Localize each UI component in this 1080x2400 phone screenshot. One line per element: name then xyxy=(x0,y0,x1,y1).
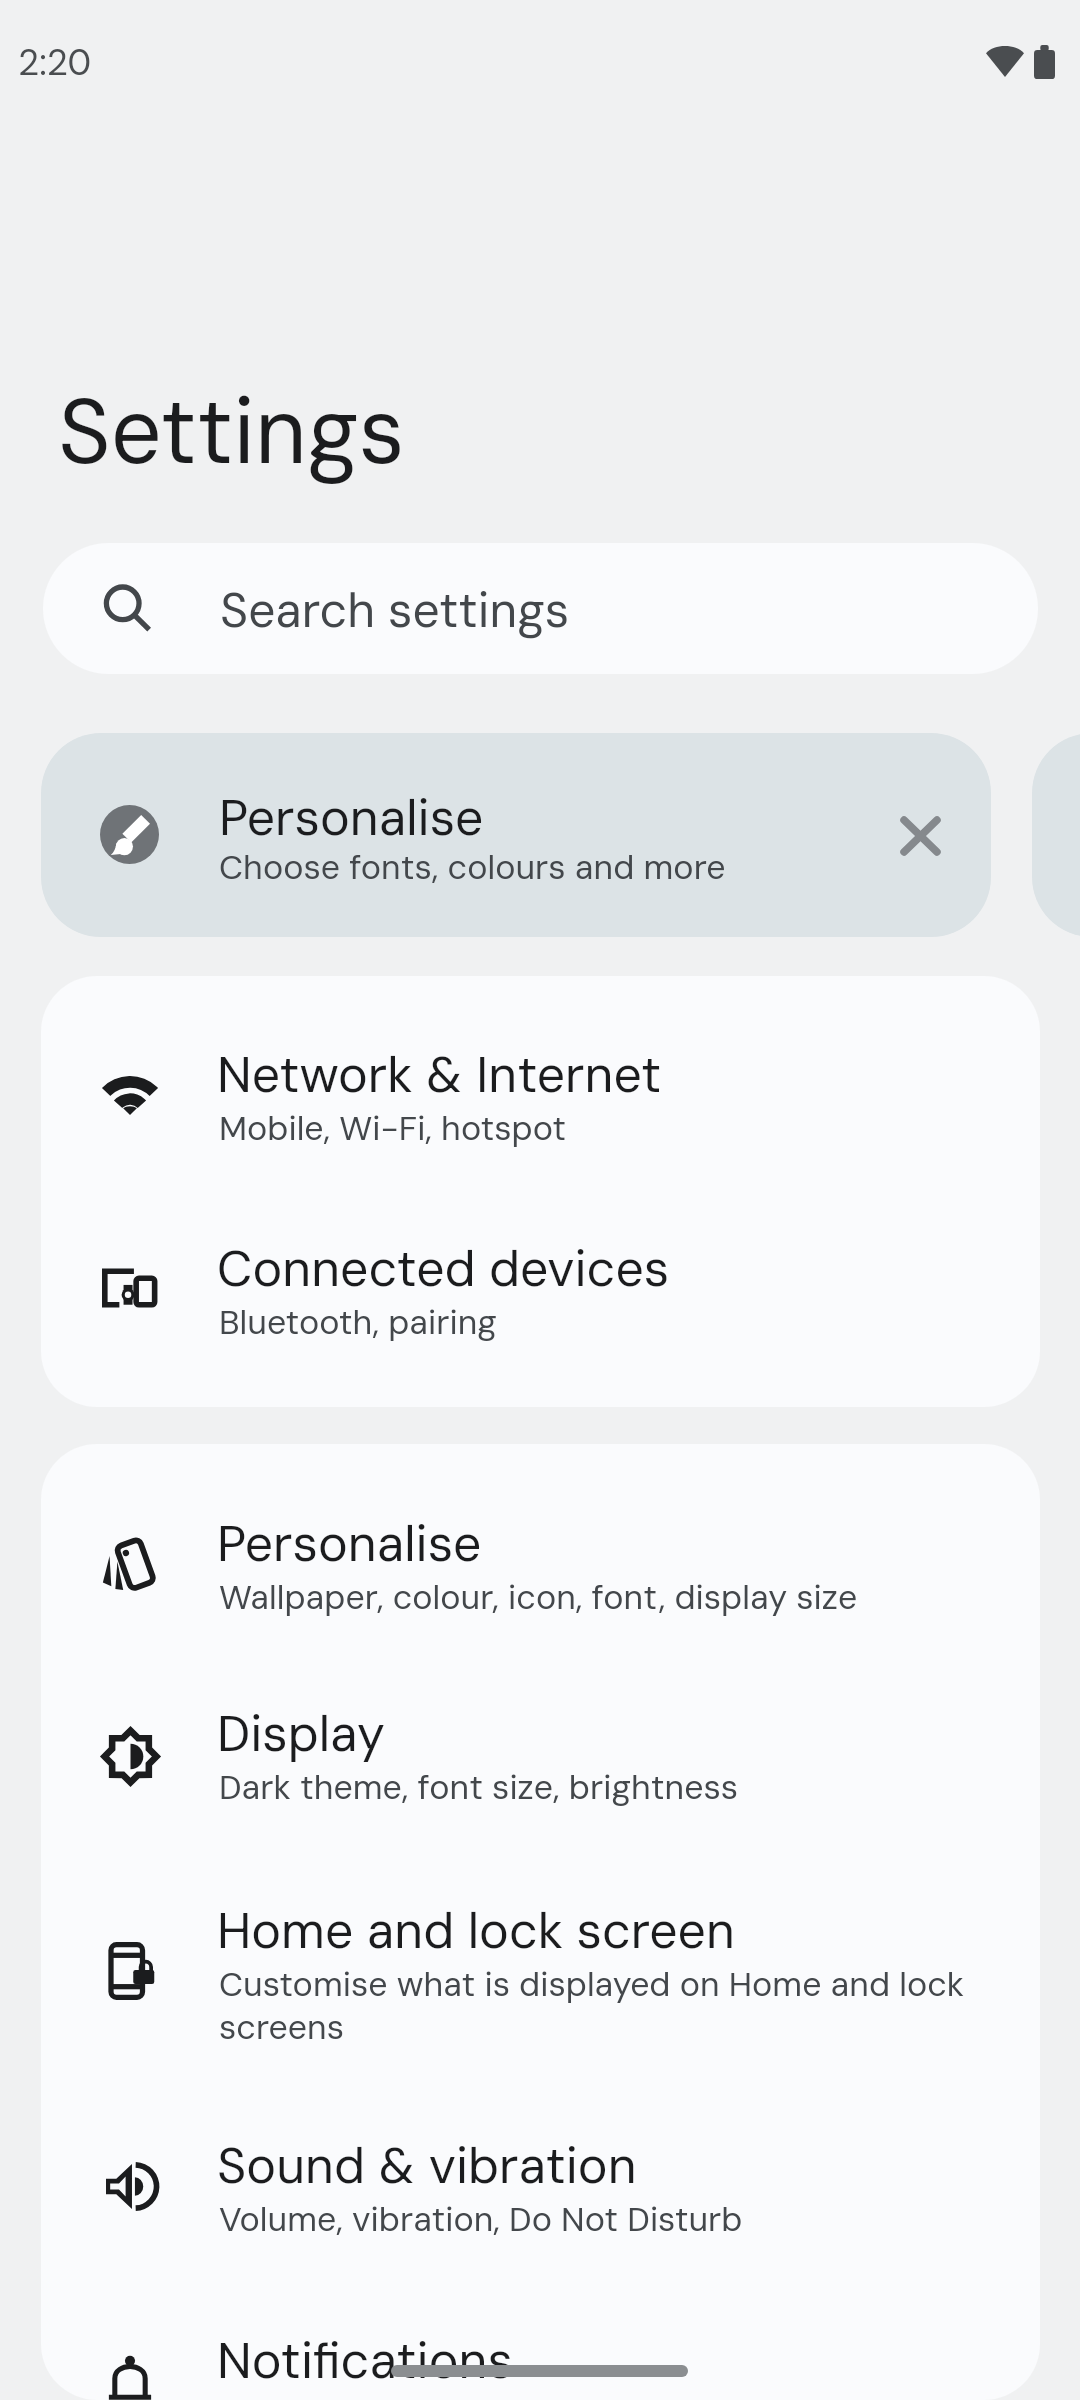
button[interactable]: Network & Internet xyxy=(41,1024,1040,1164)
staticText: Settings xyxy=(58,374,405,491)
staticText: Personalise xyxy=(217,1511,482,1576)
staticText: Wallpaper, colour, icon, font, display s… xyxy=(219,1575,979,1619)
staticText: Customise what is displayed on Home and … xyxy=(219,1962,979,2049)
button[interactable]: Display xyxy=(41,1683,1040,1823)
staticText: Choose fonts, colours and more xyxy=(219,845,726,889)
staticText: Dark theme, font size, brightness xyxy=(219,1765,979,1809)
staticText: Volume, vibration, Do Not Disturb xyxy=(219,2197,979,2241)
button[interactable]: Notifications xyxy=(41,2310,1040,2400)
button[interactable]: Search settings xyxy=(43,543,1038,674)
staticText: 2:20 xyxy=(18,39,92,86)
button[interactable]: Personalise xyxy=(41,733,991,937)
button[interactable]: Home and lock screen xyxy=(41,1880,1040,2055)
button[interactable]: Sound & vibration xyxy=(41,2115,1040,2255)
staticText: Search settings xyxy=(220,579,570,641)
staticText: Connected devices xyxy=(217,1236,670,1301)
staticText: Notifications xyxy=(217,2328,513,2393)
staticText: Mobile, Wi-Fi, hotspot xyxy=(219,1106,979,1150)
staticText: Personalise xyxy=(219,785,484,850)
staticText: Display xyxy=(217,1701,385,1766)
staticText: Sound & vibration xyxy=(217,2133,637,2198)
button[interactable]: Dismiss suggestion xyxy=(860,776,980,896)
staticText: Bluetooth, pairing xyxy=(219,1300,979,1344)
staticText: Network & Internet xyxy=(217,1042,662,1107)
button[interactable]: Personalise xyxy=(41,1493,1040,1633)
staticText: Home and lock screen xyxy=(217,1898,735,1963)
button[interactable]: Connected devices xyxy=(41,1218,1040,1358)
